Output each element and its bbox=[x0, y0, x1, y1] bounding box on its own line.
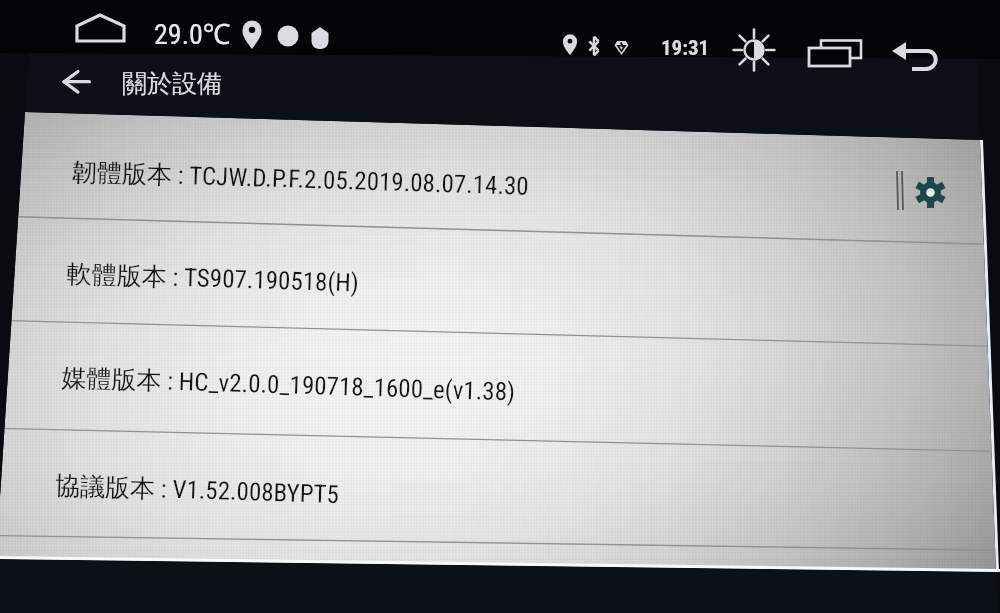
staticText: 協議版本 : V1.52.008BYPT5 bbox=[55, 470, 339, 510]
button[interactable]: Settings bbox=[915, 177, 946, 208]
button[interactable]: 軟體版本 : TS907.190518(H) bbox=[0, 214, 1000, 350]
button[interactable]: Back bbox=[52, 58, 100, 106]
button[interactable]: 關於設備 bbox=[122, 68, 222, 99]
button[interactable]: 19:31 bbox=[661, 36, 710, 61]
staticText: 韌體版本 : TCJW.D.P.F.2.05.2019.08.07.14.30 bbox=[71, 156, 529, 202]
button[interactable]: 韌體版本 : TCJW.D.P.F.2.05.2019.08.07.14.30 bbox=[3, 110, 1000, 246]
staticText: 19:31 bbox=[661, 36, 710, 61]
staticText: 媒體版本 : HC_v2.0.0_190718_1600_e(v1.38) bbox=[61, 362, 516, 407]
staticText: 29.0℃ bbox=[154, 14, 231, 52]
staticText: 關於設備 bbox=[122, 68, 222, 99]
button[interactable]: 29.0℃ bbox=[154, 14, 231, 52]
staticText: 軟體版本 : TS907.190518(H) bbox=[66, 258, 360, 299]
button[interactable]: 協議版本 : V1.52.008BYPT5 bbox=[0, 426, 995, 566]
button[interactable]: 媒體版本 : HC_v2.0.0_190718_1600_e(v1.38) bbox=[0, 318, 999, 458]
